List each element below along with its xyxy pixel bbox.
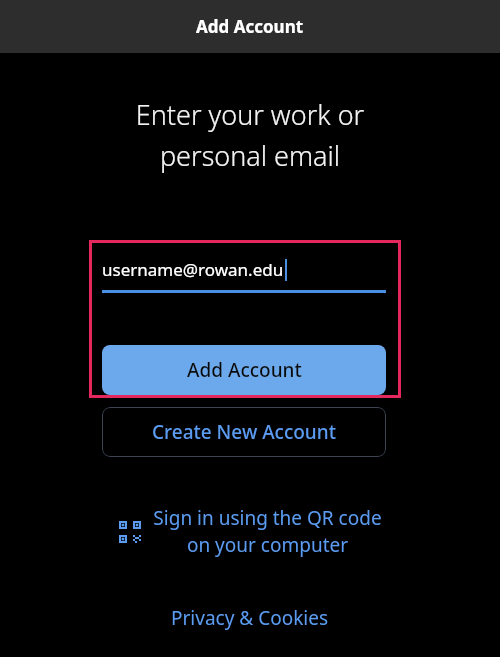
staticText: Sign in using the QR code on your comput… [153,505,382,558]
staticText: username@rowan.edu [102,258,284,281]
button[interactable]: Privacy & Cookies [0,598,500,638]
other: QR code [119,521,141,543]
button[interactable]: QR code [0,505,500,558]
staticText: Add Account [196,15,304,38]
staticText: Add Account [187,357,302,383]
button[interactable]: Create New Account [102,407,386,457]
button[interactable]: username@rowan.edu [102,258,386,293]
button[interactable]: Add Account [102,345,386,395]
staticText: Privacy & Cookies [171,605,329,631]
staticText: Create New Account [152,419,336,445]
staticText: Enter your work or personal email [0,96,500,174]
